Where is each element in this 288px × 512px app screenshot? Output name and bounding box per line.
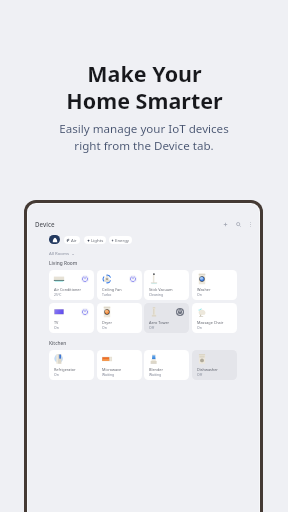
- staticText: Microwave: [102, 367, 122, 372]
- staticText: Waiting: [102, 372, 115, 377]
- button[interactable]: TV: [49, 303, 94, 333]
- staticText: Air: [71, 237, 77, 243]
- button[interactable]: Aero Tower: [144, 303, 189, 333]
- button[interactable]: Power Air Conditioner: [81, 275, 89, 283]
- staticText: Blender: [149, 367, 163, 372]
- staticText: Make Your Home Smarter: [66, 59, 223, 115]
- staticText: Refrigerator: [54, 367, 76, 372]
- staticText: Washer: [197, 287, 211, 292]
- button[interactable]: Massage Chair: [192, 303, 237, 333]
- staticText: Device: [35, 220, 55, 228]
- staticText: Massage Chair: [197, 320, 224, 325]
- button[interactable]: Search: [235, 221, 242, 228]
- staticText: Energy: [115, 237, 130, 243]
- button[interactable]: Home: [49, 235, 60, 244]
- staticText: 25°C: [54, 292, 62, 297]
- staticText: On: [54, 325, 59, 330]
- button[interactable]: Air Conditioner: [49, 270, 94, 300]
- button[interactable]: Dryer: [97, 303, 142, 333]
- button[interactable]: Refrigerator: [49, 350, 94, 380]
- staticText: Cleaning: [149, 292, 163, 297]
- staticText: On: [197, 292, 202, 297]
- staticText: Easily manage your IoT devices right fro…: [59, 121, 229, 153]
- staticText: Waiting: [149, 372, 162, 377]
- button[interactable]: Microwave: [97, 350, 142, 380]
- button[interactable]: Stick Vacuum: [144, 270, 189, 300]
- staticText: Stick Vacuum: [149, 287, 173, 292]
- button[interactable]: Washer: [192, 270, 237, 300]
- button[interactable]: Power Aero Tower: [176, 308, 184, 316]
- button[interactable]: Add: [222, 221, 229, 228]
- staticText: Ceiling Fan: [102, 287, 122, 292]
- staticText: Off: [149, 325, 154, 330]
- button[interactable]: Dishwasher: [192, 350, 237, 380]
- button[interactable]: Ceiling Fan: [97, 270, 142, 300]
- staticText: Kitchen: [49, 340, 67, 347]
- staticText: On: [54, 372, 59, 377]
- staticText: Lights: [91, 237, 104, 243]
- button[interactable]: Air: [64, 236, 80, 244]
- staticText: On: [102, 325, 107, 330]
- staticText: Aero Tower: [149, 320, 170, 325]
- button[interactable]: Blender: [144, 350, 189, 380]
- staticText: Air Conditioner: [54, 287, 82, 292]
- staticText: Off: [197, 372, 202, 377]
- staticText: TV: [54, 320, 59, 325]
- staticText: Living Room: [49, 260, 78, 267]
- staticText: On: [197, 325, 202, 330]
- staticText: All Rooms ⌄: [49, 250, 75, 256]
- staticText: Dryer: [102, 320, 112, 325]
- button[interactable]: More options: [247, 221, 254, 228]
- staticText: Turbo: [102, 292, 112, 297]
- button[interactable]: Lights: [84, 236, 106, 244]
- button[interactable]: Energy: [109, 236, 132, 244]
- button[interactable]: Power TV: [81, 308, 89, 316]
- button[interactable]: Power Ceiling Fan: [129, 275, 137, 283]
- staticText: Dishwasher: [197, 367, 218, 372]
